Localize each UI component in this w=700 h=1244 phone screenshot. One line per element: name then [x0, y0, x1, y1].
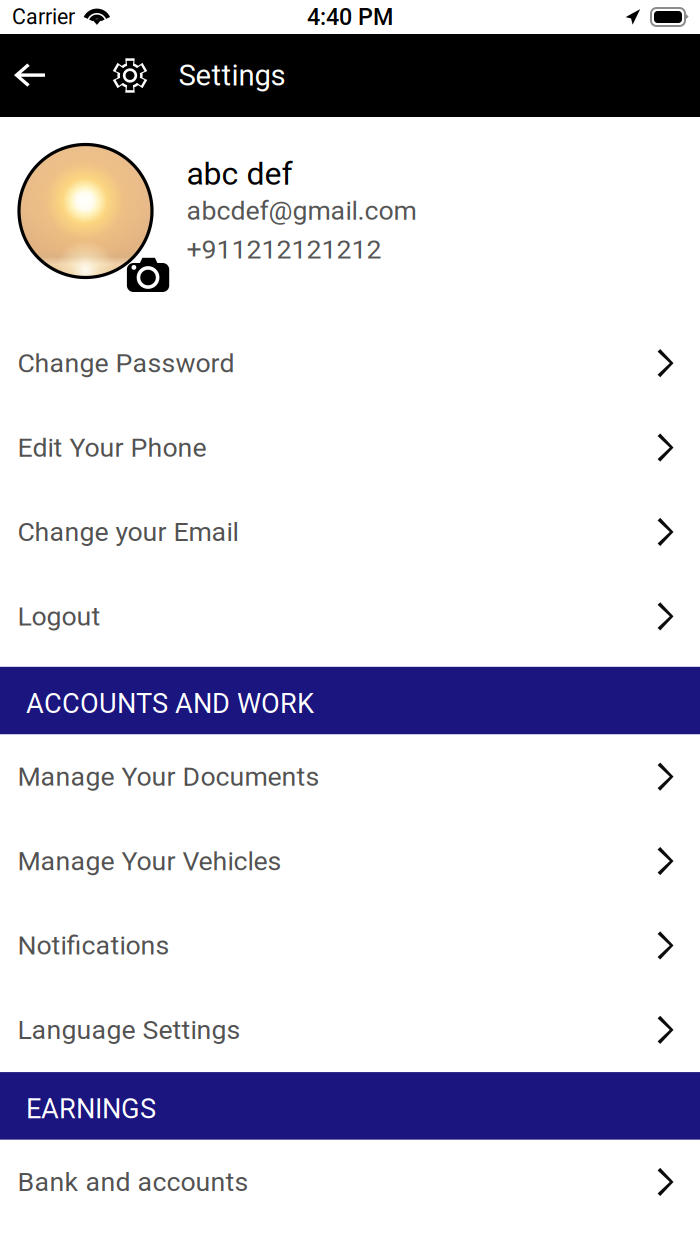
button[interactable]: Language Settings [0, 988, 700, 1072]
button[interactable]: Notifications [0, 903, 700, 988]
button[interactable]: Change Password [0, 321, 700, 405]
staticText: Logout [17, 601, 100, 632]
staticText: Settings [178, 58, 285, 93]
staticText: abcdef@gmail.com [186, 195, 416, 226]
staticText: abc def [186, 155, 292, 192]
button[interactable]: Settings [170, 34, 285, 117]
staticText: 4:40 PM [307, 3, 393, 31]
button[interactable]: Logout [0, 574, 700, 659]
staticText: Change your Email [17, 516, 238, 548]
staticText: Change Password [17, 348, 234, 379]
button[interactable]: Change your Email [0, 490, 700, 574]
staticText: Carrier [12, 4, 75, 29]
button[interactable]: Manage Your Vehicles [0, 819, 700, 903]
staticText: Edit Your Phone [17, 432, 206, 463]
staticText: EARNINGS [26, 1093, 156, 1125]
button[interactable]: Back [0, 34, 90, 117]
staticText: Bank and accounts [17, 1166, 248, 1198]
staticText: Manage Your Vehicles [17, 845, 281, 877]
staticText: Language Settings [17, 1014, 240, 1046]
button[interactable]: Bank and accounts [0, 1140, 700, 1224]
button[interactable]: App settings [90, 34, 170, 117]
staticText: Notifications [17, 930, 169, 961]
staticText: ACCOUNTS AND WORK [26, 688, 314, 720]
button[interactable]: Edit Your Phone [0, 405, 700, 490]
button[interactable]: Change profile photo [127, 258, 169, 292]
staticText: Manage Your Documents [17, 761, 319, 792]
staticText: +911212121212 [186, 234, 381, 265]
button[interactable]: Manage Your Documents [0, 734, 700, 819]
